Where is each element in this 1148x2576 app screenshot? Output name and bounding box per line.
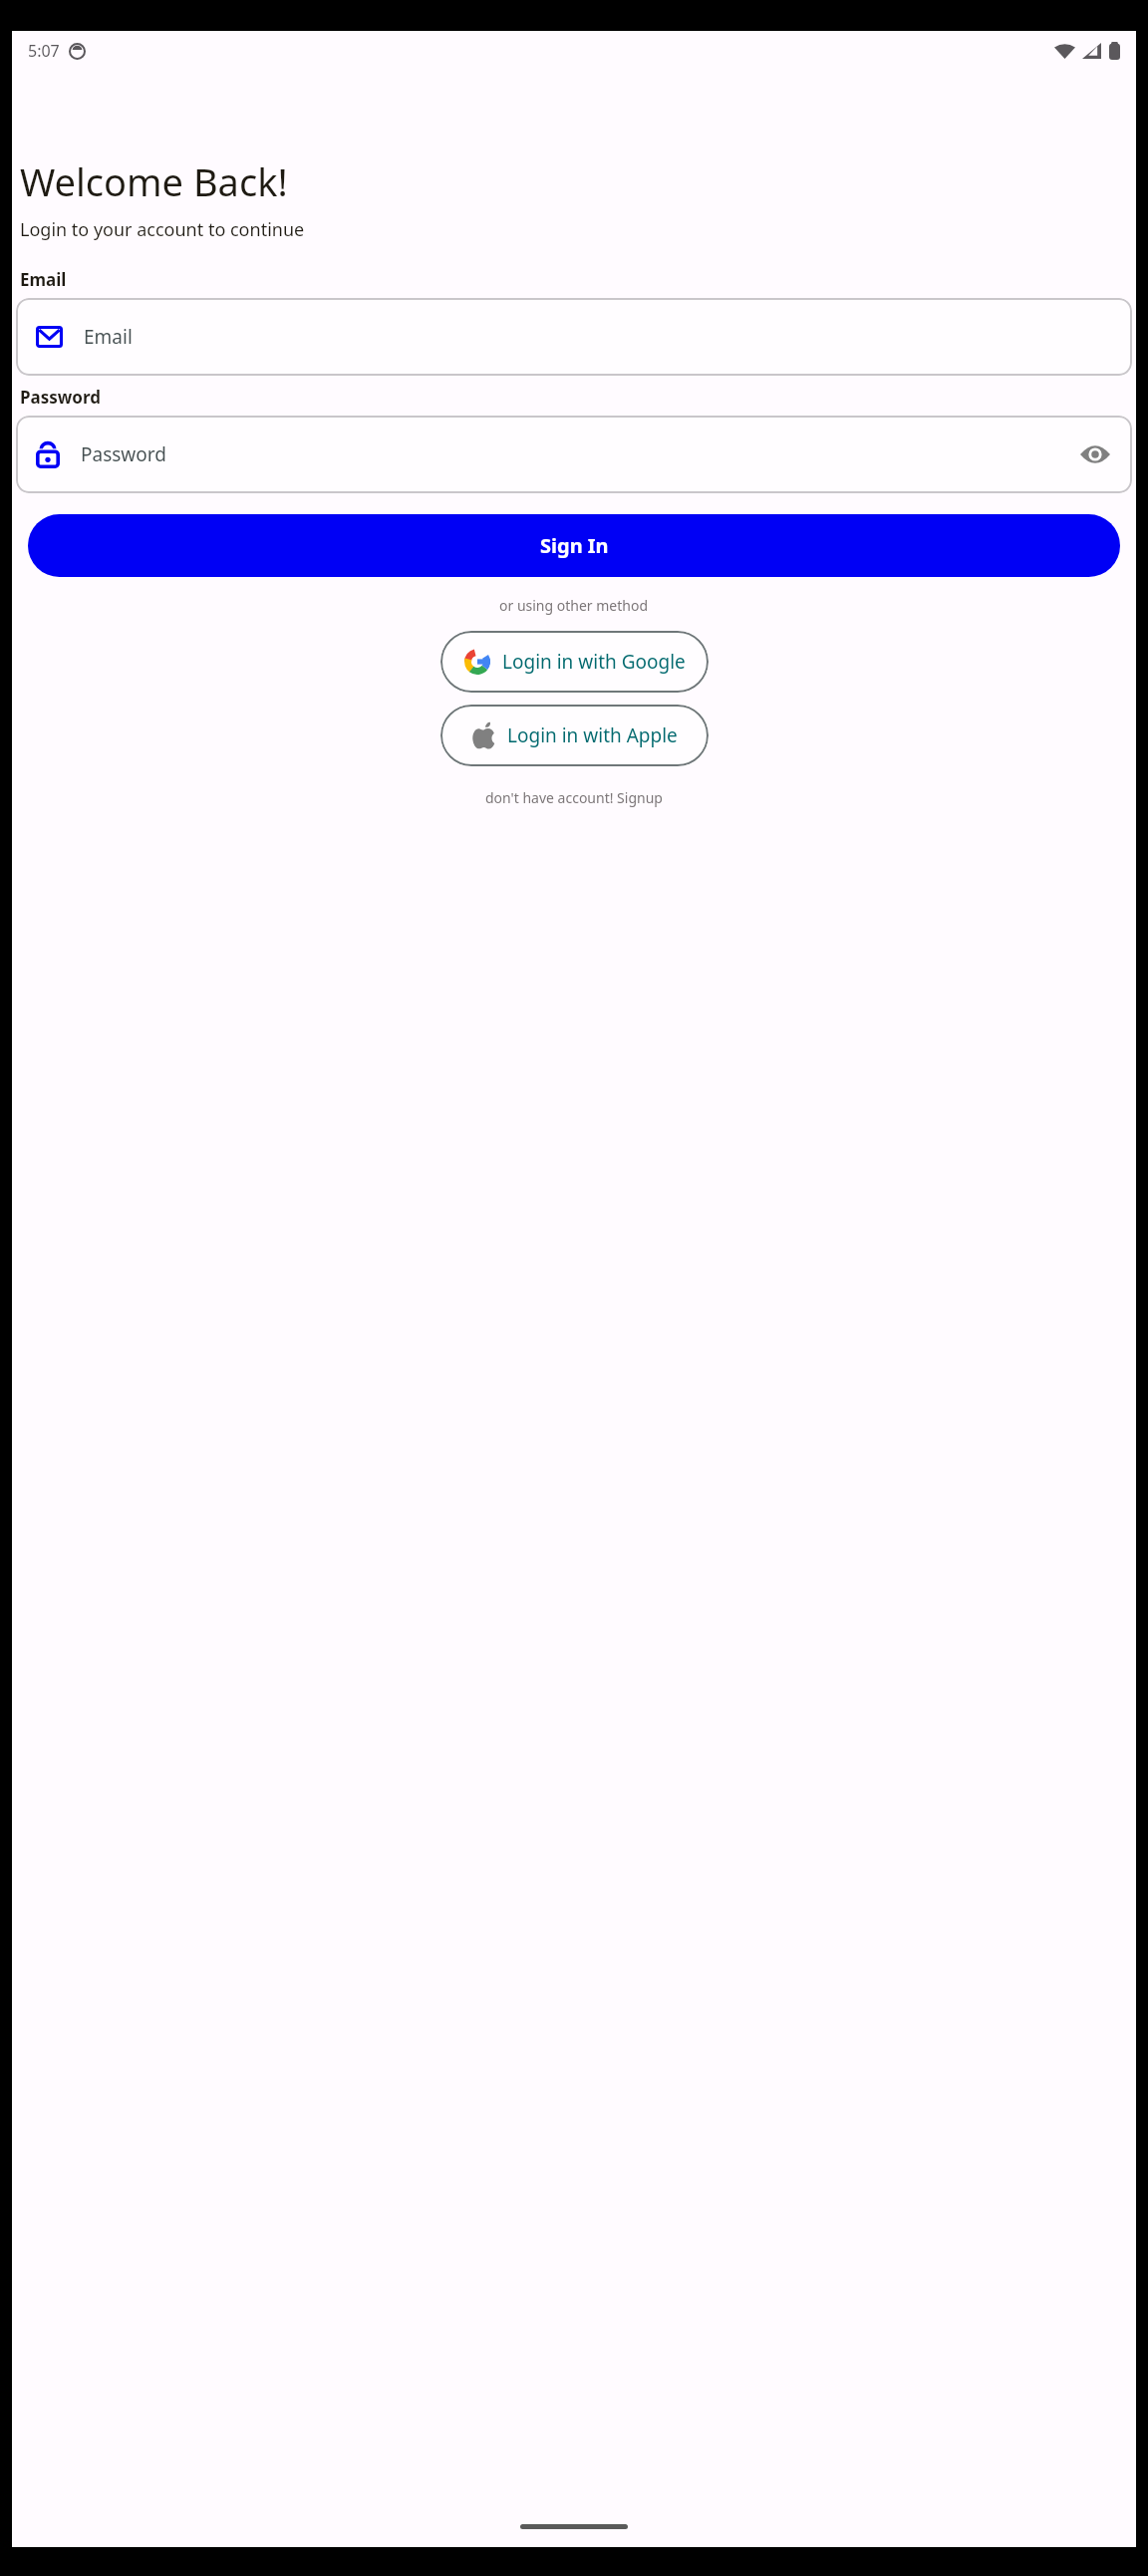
staticText: Password: [20, 386, 101, 409]
staticText: 5:07: [28, 40, 60, 62]
button[interactable]: Password: [16, 416, 1132, 493]
staticText: Password: [81, 441, 166, 467]
staticText: Email: [20, 268, 67, 291]
button[interactable]: don't have account! Signup: [16, 788, 1132, 807]
staticText: Email: [84, 324, 133, 350]
button[interactable]: Sign In: [28, 514, 1120, 577]
staticText: Login in with Google: [502, 649, 686, 675]
button[interactable]: Email: [16, 298, 1132, 376]
staticText: or using other method: [499, 596, 649, 615]
button[interactable]: Login in with Apple: [440, 705, 709, 766]
button[interactable]: Login in with Google: [440, 631, 709, 693]
staticText: Login to your account to continue: [20, 217, 305, 242]
staticText: Login in with Apple: [507, 722, 678, 748]
staticText: don't have account! Signup: [485, 788, 663, 807]
staticText: Welcome Back!: [20, 155, 288, 207]
staticText: Sign In: [540, 532, 609, 559]
button[interactable]: Toggle password visibility: [1078, 437, 1112, 471]
